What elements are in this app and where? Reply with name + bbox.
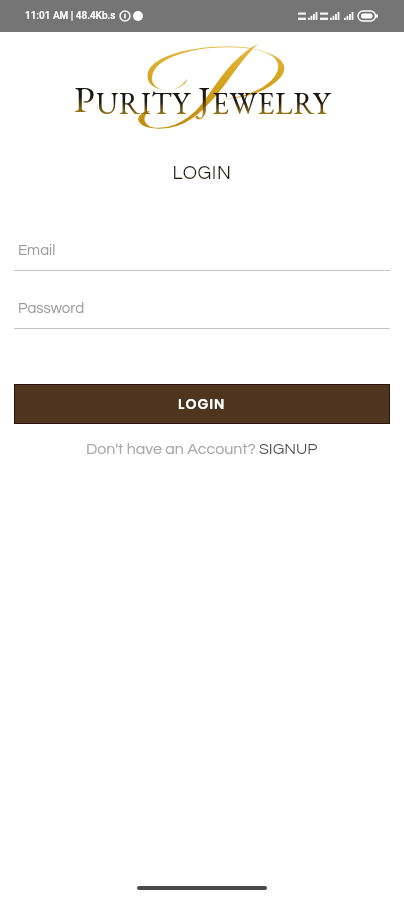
staticText: LOGIN — [178, 394, 226, 414]
staticText: URITY — [96, 84, 191, 123]
staticText: LOGIN — [0, 163, 404, 183]
staticText: Don't have an Account? — [86, 441, 259, 457]
staticText: Password — [18, 301, 85, 316]
button[interactable]: LOGIN — [14, 384, 390, 424]
staticText — [191, 84, 198, 123]
staticText: 11:01 AM | 48.4Kb.s — [25, 10, 116, 22]
staticText: Email — [18, 243, 56, 258]
button[interactable]: SIGNUP — [259, 441, 318, 457]
staticText: EWELRY — [212, 84, 331, 123]
staticText: P — [74, 75, 96, 123]
staticText: SIGNUP — [259, 441, 318, 457]
staticText: J — [198, 75, 212, 123]
